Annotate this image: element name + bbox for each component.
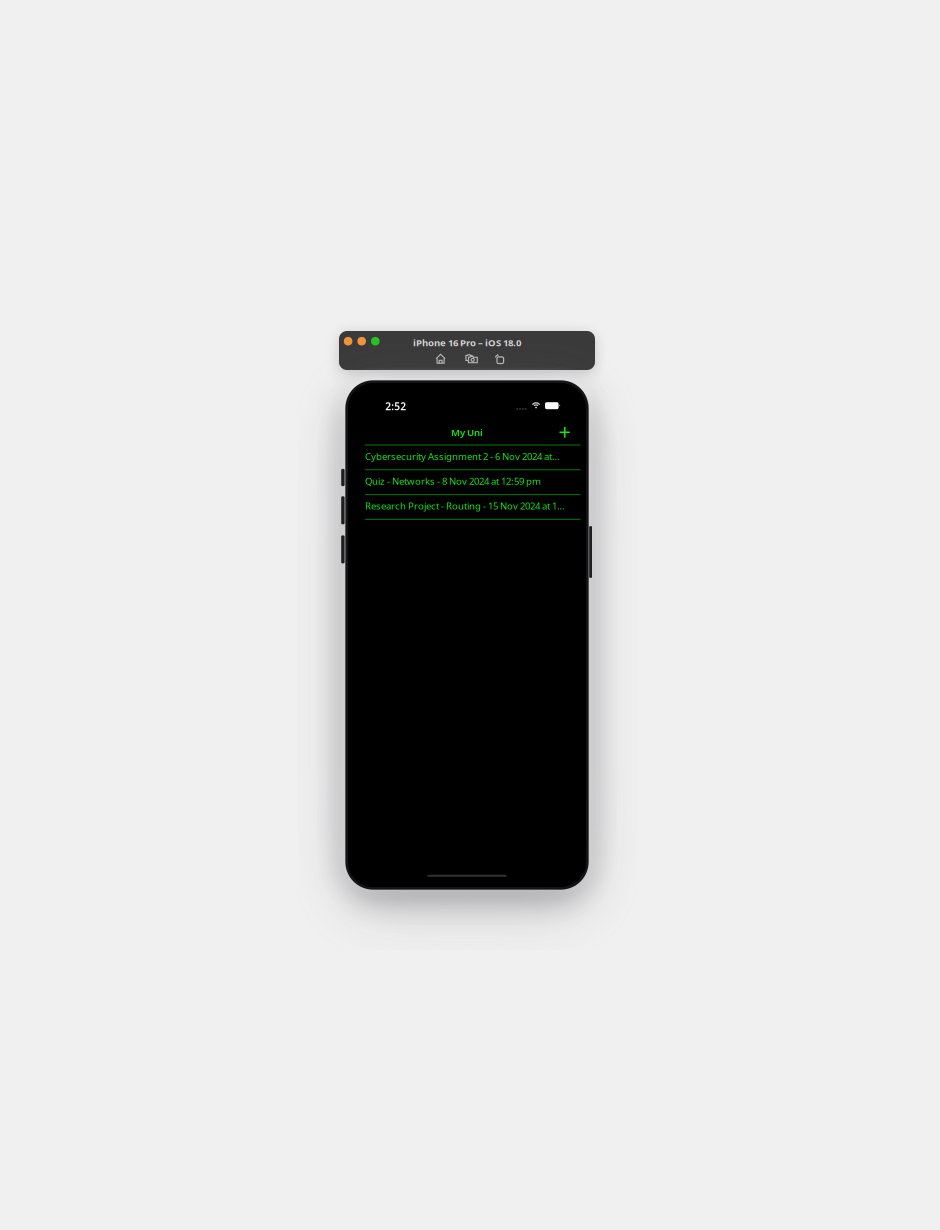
staticText: iPhone 16 Pro – iOS 18.0 bbox=[413, 336, 521, 349]
button[interactable]: Cybersecurity Assignment 2 - 6 Nov 2024 … bbox=[348, 444, 586, 469]
staticText: 2:52 bbox=[385, 399, 406, 413]
staticText: Cybersecurity Assignment 2 - 6 Nov 2024 … bbox=[365, 450, 560, 462]
button[interactable]: Home bbox=[435, 353, 446, 364]
staticText: Quiz - Networks - 8 Nov 2024 at 12:59 pm bbox=[365, 475, 541, 487]
button[interactable]: Screenshot bbox=[465, 353, 478, 364]
button[interactable]: Rotate bbox=[495, 353, 504, 364]
button[interactable]: Add bbox=[559, 427, 570, 438]
staticText: Research Project - Routing - 15 Nov 2024… bbox=[365, 499, 565, 512]
staticText: My Uni bbox=[451, 426, 483, 439]
button[interactable]: Quiz - Networks - 8 Nov 2024 at 12:59 pm bbox=[348, 469, 586, 493]
button[interactable]: Research Project - Routing - 15 Nov 2024… bbox=[348, 493, 586, 518]
